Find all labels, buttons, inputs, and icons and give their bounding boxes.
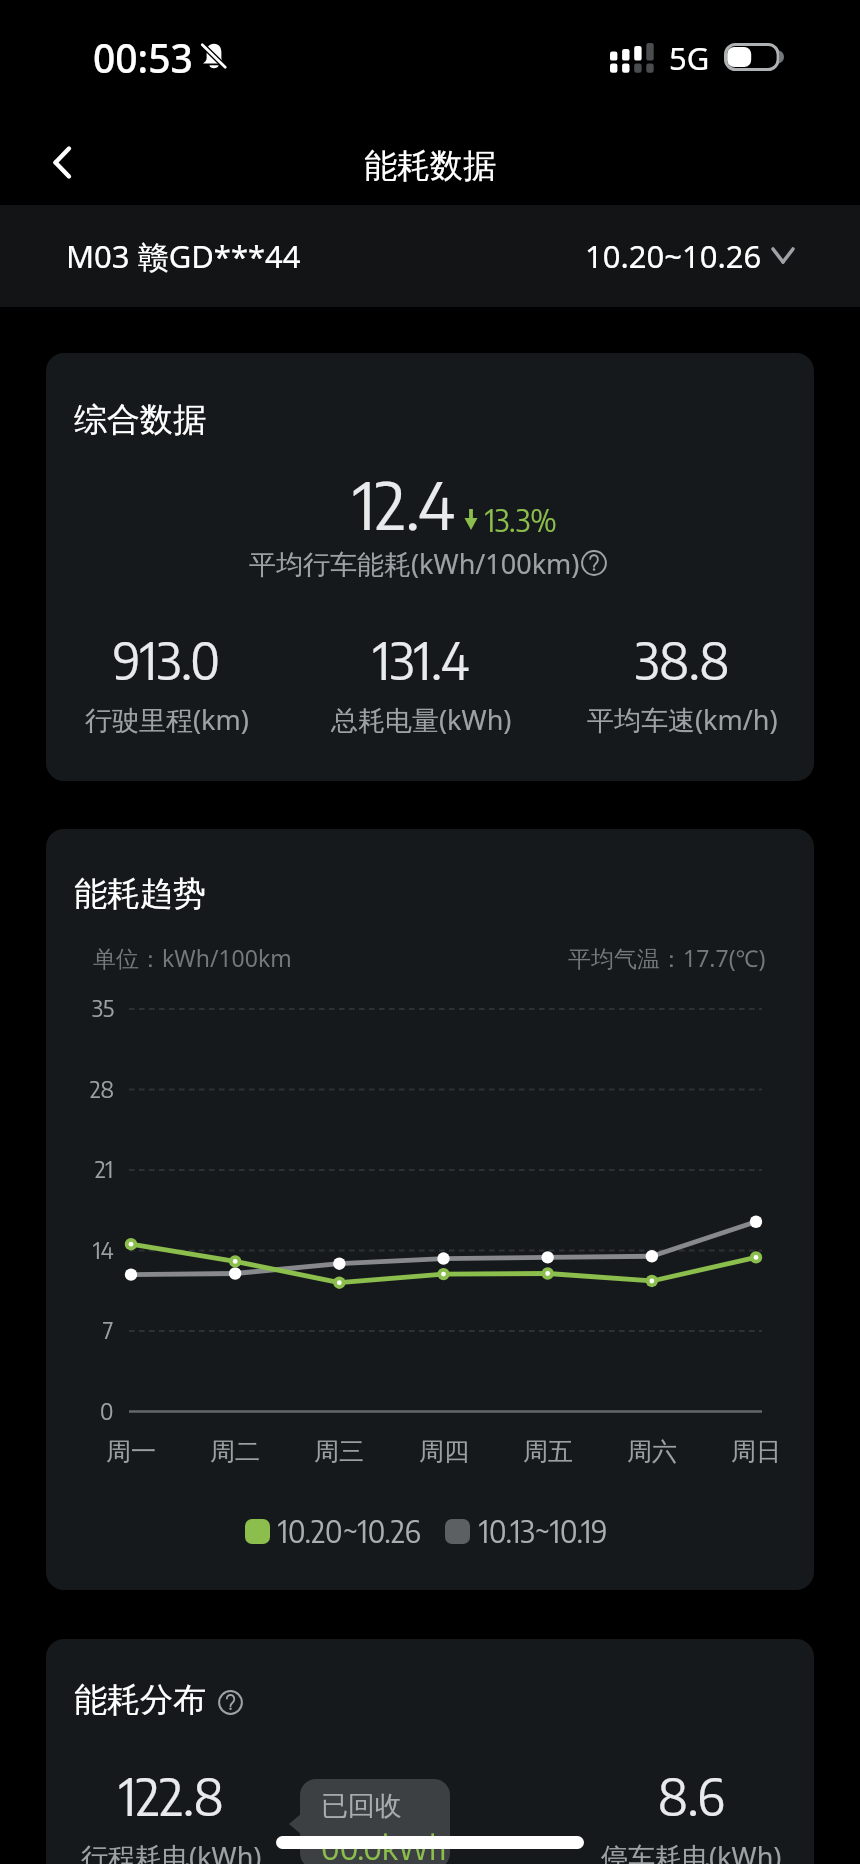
staticText: 10.20~10.26 <box>585 235 762 277</box>
staticText: 周五 <box>523 1436 573 1467</box>
button[interactable]: 平均行车能耗说明 <box>571 540 617 586</box>
staticText: 0 <box>100 1396 114 1425</box>
staticText: 28 <box>90 1074 114 1103</box>
staticText: 5G <box>669 37 710 79</box>
button[interactable]: M03 赣GD***44 <box>46 221 321 291</box>
staticText: 综合数据 <box>74 399 206 441</box>
staticText: 00:53 <box>93 31 193 84</box>
staticText: 能耗分布 <box>74 1679 206 1721</box>
staticText: 7 <box>103 1315 114 1344</box>
staticText: 单位：kWh/100km <box>93 942 292 973</box>
staticText: 8.6 <box>658 1763 725 1827</box>
staticText: 周三 <box>314 1436 364 1467</box>
staticText: 13.3% <box>485 501 557 538</box>
staticText: 10.20~10.26 <box>278 1512 421 1549</box>
staticText: 14 <box>93 1235 114 1264</box>
staticText: 平均行车能耗(kWh/100km) <box>249 545 580 582</box>
staticText: M03 赣GD***44 <box>66 235 301 277</box>
staticText: 行程耗电(kWh) <box>81 1838 262 1864</box>
staticText: 913.0 <box>113 627 221 691</box>
staticText: 平均气温：17.7(℃) <box>568 942 766 973</box>
staticText: 38.8 <box>635 627 730 691</box>
staticText: 周四 <box>419 1436 469 1467</box>
staticText: 131.4 <box>373 627 470 691</box>
staticText: 周二 <box>210 1436 260 1467</box>
staticText: 122.8 <box>119 1763 224 1827</box>
button[interactable]: 返回 <box>30 129 96 195</box>
staticText: 能耗数据 <box>364 145 496 187</box>
staticText: 行驶里程(km) <box>85 701 249 738</box>
staticText: 周一 <box>106 1436 156 1467</box>
staticText: 能耗趋势 <box>74 873 206 915</box>
button[interactable]: 能耗分布说明 <box>208 1680 253 1725</box>
staticText: 停车耗电(kWh) <box>601 1838 782 1864</box>
staticText: 12.4 <box>353 462 455 544</box>
staticText: 周六 <box>627 1436 677 1467</box>
staticText: 35 <box>92 993 114 1022</box>
button[interactable]: 10.20~10.26 <box>565 221 819 291</box>
staticText: 周日 <box>731 1436 781 1467</box>
staticText: 10.13~10.19 <box>479 1512 608 1549</box>
staticText: 00.0kWh <box>321 1827 447 1864</box>
staticText: 总耗电量(kWh) <box>331 701 512 738</box>
staticText: 平均车速(km/h) <box>587 701 778 738</box>
staticText: 21 <box>95 1154 114 1183</box>
staticText: 已回收 <box>321 1789 402 1823</box>
